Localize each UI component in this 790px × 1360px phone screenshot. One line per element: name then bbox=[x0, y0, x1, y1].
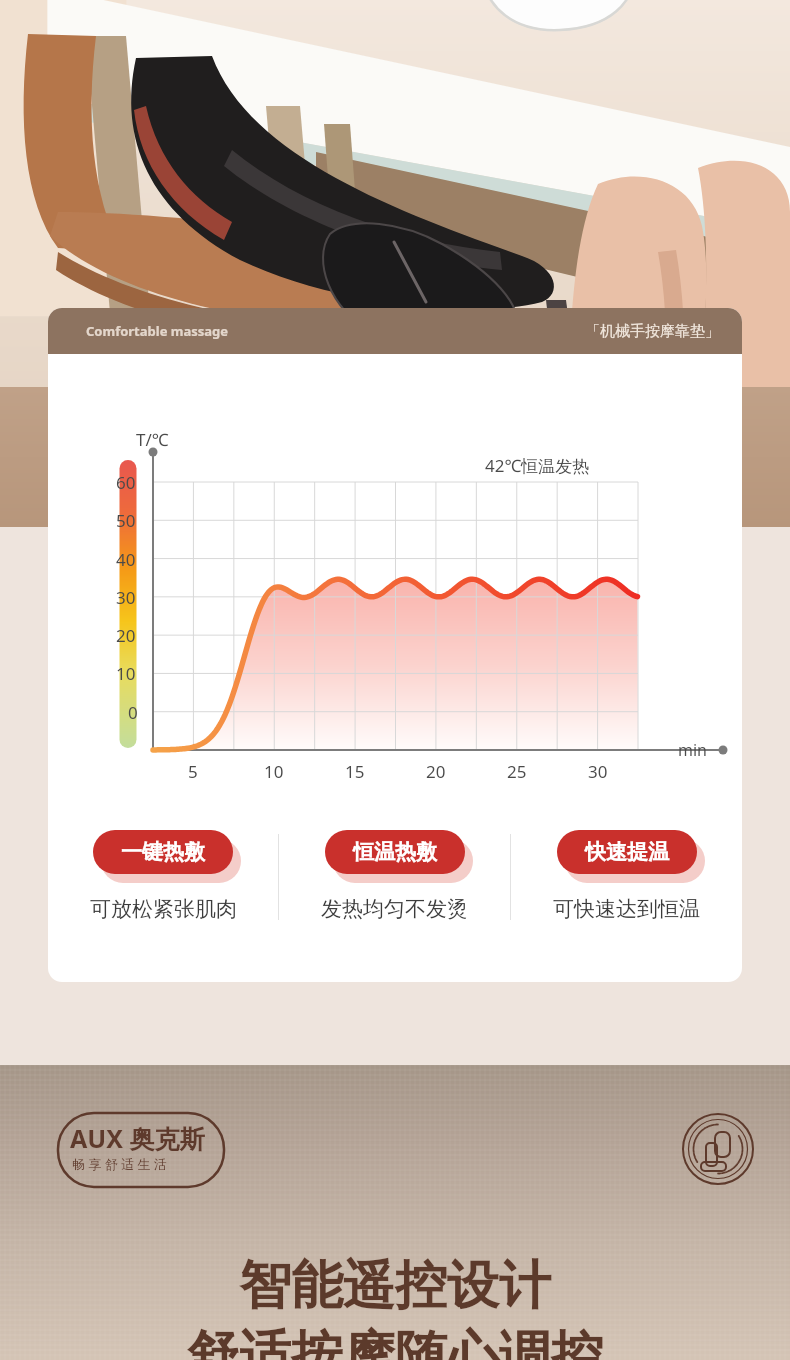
staticText: 50 bbox=[116, 509, 136, 532]
staticText: 30 bbox=[588, 760, 608, 783]
button[interactable]: 一键热敷 bbox=[48, 820, 278, 922]
staticText: 20 bbox=[116, 624, 136, 647]
staticText: 恒温热敷 bbox=[353, 839, 437, 865]
staticText: 60 bbox=[116, 471, 136, 494]
button[interactable]: 恒温热敷 bbox=[279, 820, 510, 922]
staticText: 可快速达到恒温 bbox=[553, 896, 700, 922]
staticText: 0 bbox=[128, 701, 138, 724]
staticText: 10 bbox=[264, 760, 284, 783]
staticText: 25 bbox=[507, 760, 527, 783]
staticText: 30 bbox=[116, 586, 136, 609]
staticText: 「机械手按摩靠垫」 bbox=[585, 322, 720, 341]
staticText: AUX 奥克斯 bbox=[70, 1121, 205, 1155]
staticText: min bbox=[678, 739, 707, 761]
staticText: Comfortable massage bbox=[86, 322, 229, 340]
button[interactable]: 快速提温 bbox=[511, 820, 742, 922]
staticText: 15 bbox=[345, 760, 365, 783]
staticText: 一键热敷 bbox=[121, 839, 205, 865]
staticText: 10 bbox=[116, 662, 136, 685]
staticText: 42℃恒温发热 bbox=[485, 454, 590, 477]
staticText: 发热均匀不发烫 bbox=[321, 896, 468, 922]
staticText: 5 bbox=[188, 760, 198, 783]
staticText: 可放松紧张肌肉 bbox=[90, 896, 237, 922]
staticText: 20 bbox=[426, 760, 446, 783]
staticText: T/℃ bbox=[136, 428, 169, 451]
staticText: 快速提温 bbox=[585, 839, 669, 865]
staticText: 畅 享 舒 适 生 活 bbox=[72, 1155, 167, 1173]
staticText: 舒适按摩随心调控 bbox=[187, 1323, 603, 1360]
staticText: 智能遥控设计 bbox=[239, 1253, 551, 1319]
staticText: 40 bbox=[116, 548, 136, 571]
